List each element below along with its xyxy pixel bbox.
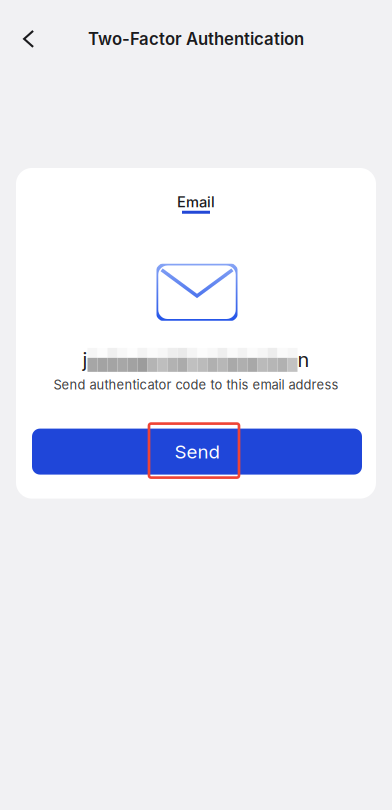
staticText: Email [177,193,215,211]
staticText: j [82,348,87,372]
button[interactable]: Email [177,193,215,214]
button[interactable]: Send [32,429,362,475]
button[interactable]: Back [0,15,48,63]
staticText: Send authenticator code to this email ad… [53,377,338,392]
staticText: n [297,348,309,372]
staticText: Two-Factor Authentication [88,29,304,49]
staticText: Send [174,440,219,463]
